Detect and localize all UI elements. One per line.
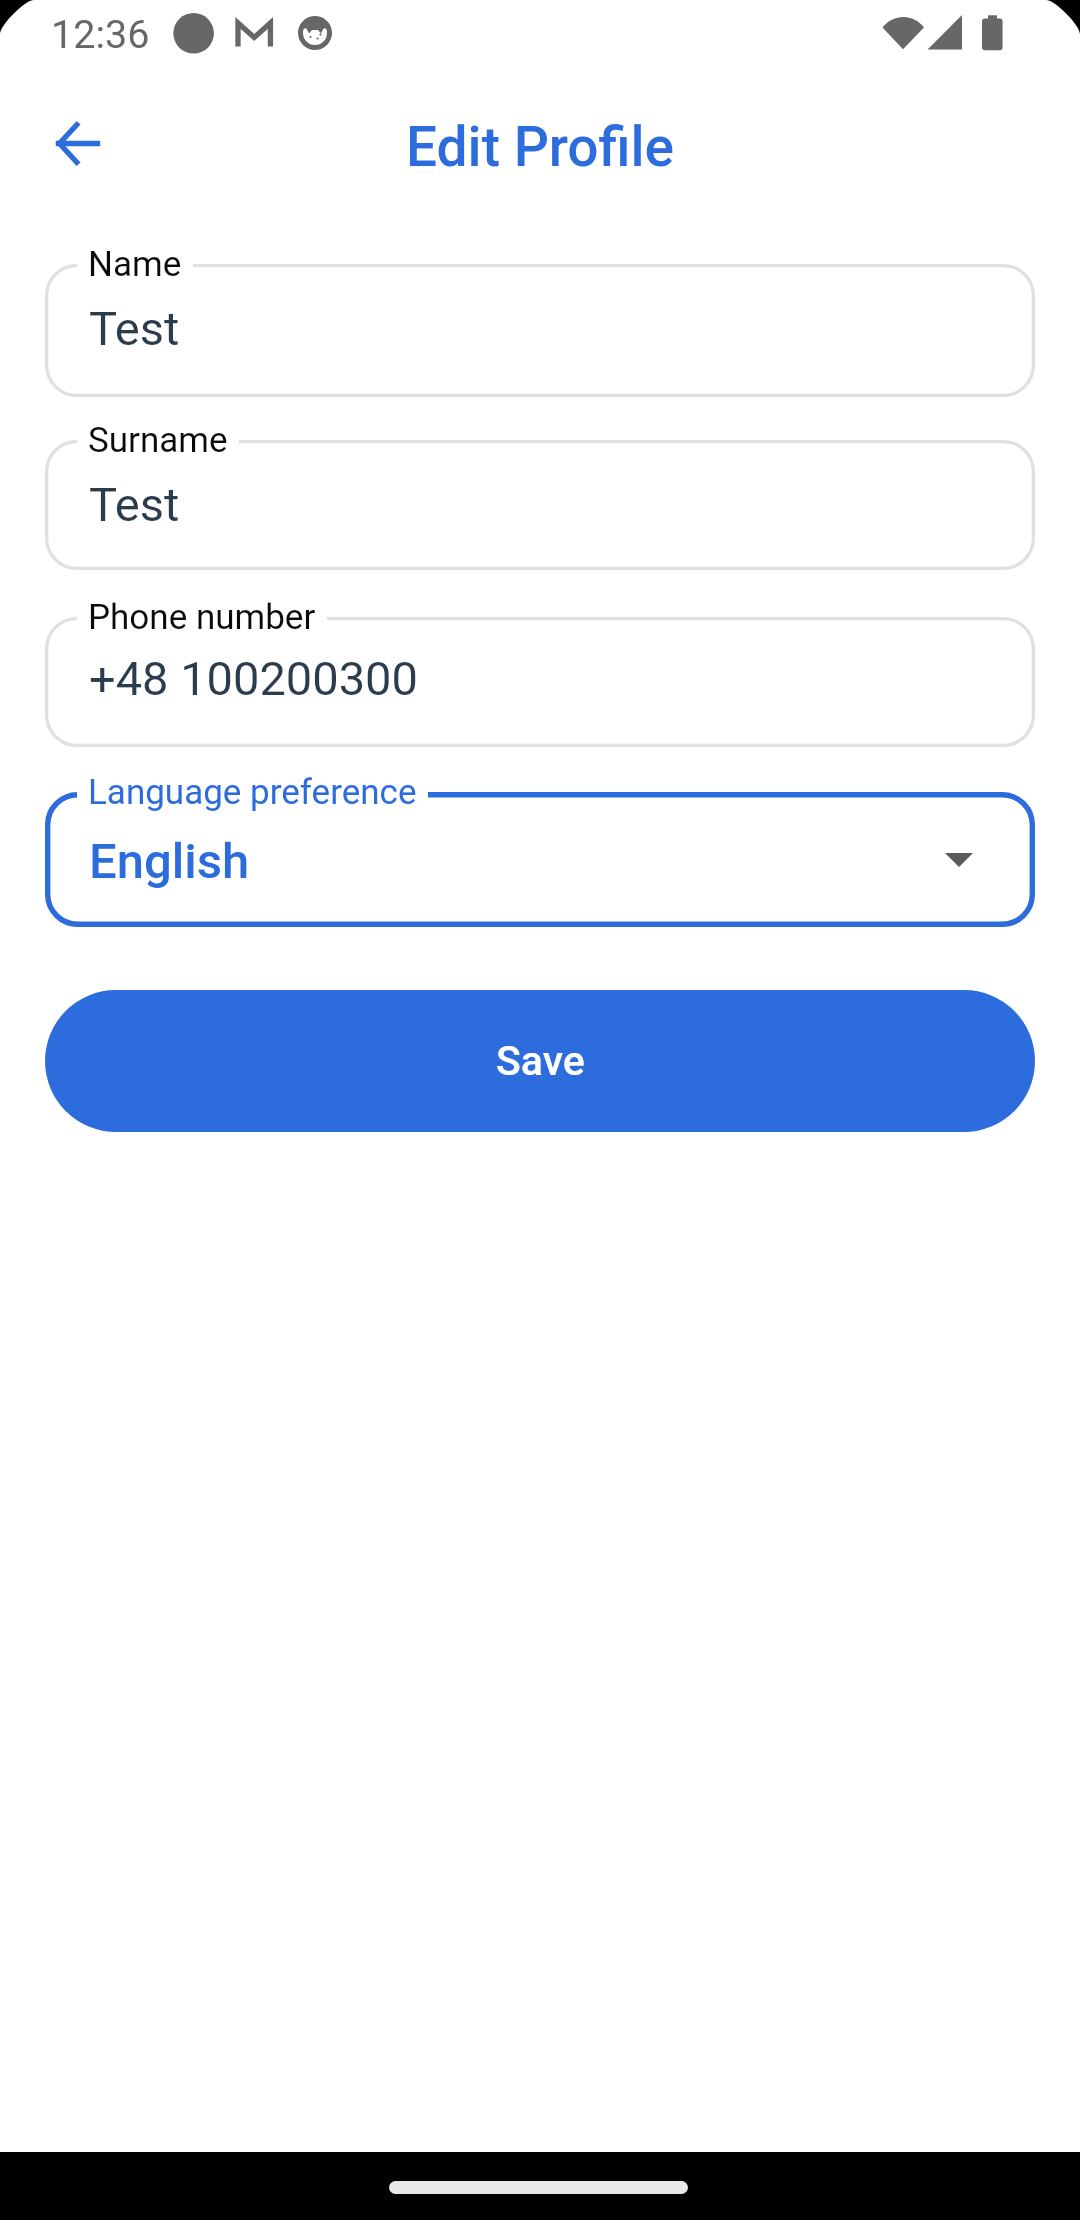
- button[interactable]: Phone number: [45, 617, 1035, 747]
- staticText: English: [89, 833, 250, 890]
- staticText: 12:36: [51, 11, 150, 57]
- button[interactable]: Surname: [45, 440, 1035, 570]
- button[interactable]: Language preference: [45, 792, 1035, 927]
- staticText: Phone number: [88, 597, 316, 638]
- button[interactable]: Save: [45, 990, 1035, 1132]
- staticText: Test: [89, 477, 180, 532]
- button[interactable]: Name: [45, 264, 1035, 397]
- staticText: Surname: [88, 420, 228, 461]
- button[interactable]: Back: [23, 88, 133, 198]
- staticText: Edit Profile: [0, 115, 1080, 179]
- staticText: Name: [88, 244, 182, 285]
- staticText: Language preference: [88, 772, 417, 813]
- staticText: Test: [89, 301, 180, 356]
- button[interactable]: Home: [0, 2152, 1080, 2220]
- staticText: +48 100200300: [89, 651, 418, 706]
- staticText: Save: [496, 1037, 585, 1085]
